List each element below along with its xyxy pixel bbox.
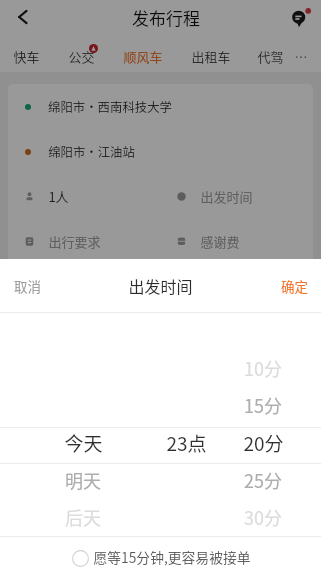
button[interactable]: 愿等15分钟,更容易被接单	[60, 537, 260, 569]
button[interactable]: Messages	[283, 0, 317, 34]
staticText: 发布行程	[132, 5, 200, 30]
button[interactable]: Back	[0, 0, 44, 34]
button[interactable]: 顺风车	[115, 44, 171, 68]
staticText: 感谢费	[200, 232, 240, 251]
staticText: 30分	[244, 504, 282, 530]
button[interactable]: 明天	[38, 465, 128, 495]
staticText: 出发时间	[200, 187, 253, 206]
staticText: 快车	[13, 47, 40, 66]
staticText: 代驾	[257, 47, 284, 66]
staticText: 公交	[68, 47, 95, 66]
button[interactable]: 出租车	[183, 44, 239, 68]
button[interactable]: 出行要求	[8, 219, 160, 264]
staticText: 23点	[166, 429, 207, 457]
button[interactable]: 25分	[218, 465, 308, 495]
button[interactable]: 感谢费	[160, 219, 312, 264]
staticText: 后天	[65, 504, 101, 530]
staticText: 绵阳市·西南科技大学	[48, 98, 172, 116]
button[interactable]: 1人	[8, 174, 160, 219]
button[interactable]: 代驾	[242, 44, 298, 68]
button[interactable]: 确定	[268, 259, 320, 312]
staticText: 确定	[281, 276, 308, 296]
staticText: 绵阳市·江油站	[48, 143, 135, 161]
staticText: 愿等15分钟,更容易被接单	[93, 547, 251, 567]
button[interactable]: 出发时间	[160, 174, 312, 219]
button[interactable]: 20分	[218, 428, 308, 458]
button[interactable]: 23点	[141, 428, 231, 458]
staticText: 出租车	[191, 47, 231, 66]
staticText: …	[294, 47, 308, 66]
button[interactable]: 取消	[0, 259, 55, 312]
button[interactable]: 公交	[53, 44, 109, 68]
staticText: 1人	[48, 187, 69, 206]
staticText: 明天	[65, 467, 101, 493]
button[interactable]: 30分	[218, 502, 308, 532]
button[interactable]: 今天	[38, 428, 128, 458]
staticText: 出行要求	[48, 232, 101, 251]
button[interactable]: 15分	[218, 390, 308, 420]
staticText: 出发时间	[128, 274, 193, 297]
staticText: 15分	[244, 392, 282, 418]
button[interactable]: 绵阳市·西南科技大学	[8, 84, 313, 129]
button[interactable]: 绵阳市·江油站	[8, 129, 313, 174]
button[interactable]: 后天	[38, 502, 128, 532]
button[interactable]: 10分	[218, 353, 308, 383]
staticText: 25分	[244, 467, 282, 493]
staticText: 今天	[64, 429, 103, 457]
staticText: 顺风车	[123, 47, 163, 66]
staticText: 10分	[244, 355, 282, 381]
staticText: 20分	[243, 429, 284, 457]
button[interactable]: 快车	[0, 44, 54, 68]
staticText: 取消	[14, 276, 41, 296]
